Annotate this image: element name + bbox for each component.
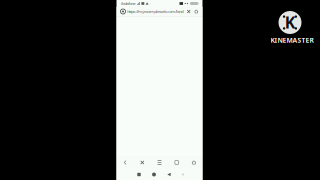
button[interactable]: Recent apps	[131, 169, 146, 179]
button[interactable]: Home	[185, 156, 202, 169]
staticText: KINEMASTER	[270, 36, 313, 45]
staticText: Vodafone	[120, 1, 135, 6]
button[interactable]: Back	[116, 156, 134, 169]
button[interactable]: Back	[161, 169, 176, 179]
button[interactable]: Home	[146, 169, 161, 179]
staticText: ·	[150, 1, 151, 6]
staticText: https://myexampleweb.com/land	[127, 9, 183, 14]
button[interactable]: Tabs	[168, 156, 185, 169]
button[interactable]: Share	[194, 9, 198, 14]
button[interactable]: Menu	[151, 156, 168, 169]
button[interactable]: Stop loading	[186, 9, 191, 14]
button[interactable]: Stop loading	[134, 156, 151, 169]
button[interactable]: Site information	[120, 9, 125, 14]
staticText: K	[285, 12, 296, 33]
